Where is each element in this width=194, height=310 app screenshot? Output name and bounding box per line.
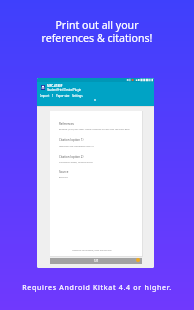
staticText: Citation (option 1): [59, 138, 84, 142]
staticText: Citation (option 2): [59, 155, 84, 159]
staticText: Requires Android Kitkat 4.4 or higher.: [0, 283, 194, 293]
button[interactable]: Import: [40, 94, 50, 98]
staticText: Import: [40, 94, 50, 98]
staticText: 1/1: [94, 259, 99, 263]
button[interactable]: Settings: [72, 94, 83, 98]
button[interactable]: 1/1: [50, 258, 142, 264]
staticText: Paper size: [56, 94, 70, 98]
staticText: Source: [59, 170, 69, 174]
staticText: MFC-4180F: [47, 84, 63, 88]
button[interactable]: Print document: [136, 258, 140, 262]
staticText: Taxonomic and classification Tenn 79: [59, 145, 94, 148]
staticText: References: [59, 122, 75, 126]
staticText: StudentPrint/Device/Plugin: [47, 88, 82, 92]
staticText: 1: [52, 94, 54, 98]
staticText: Print out all your references & citation…: [0, 18, 194, 45]
staticText: Book onli: [59, 176, 68, 179]
staticText: Settings: [72, 94, 83, 98]
staticText: Curlingfrom model, young promont: [59, 161, 93, 164]
button[interactable]: 1: [52, 94, 54, 98]
staticText: created by MR complete, more due text em…: [72, 249, 112, 252]
staticText: Example: (n.d.C) text Tudor Natural coll…: [59, 128, 130, 131]
button[interactable]: Paper size: [56, 94, 70, 98]
